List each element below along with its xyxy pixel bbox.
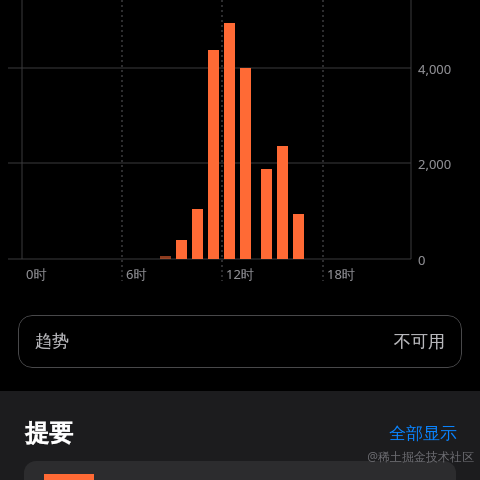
staticText: 18时 bbox=[327, 265, 355, 283]
staticText: @稀土掘金技术社区 bbox=[367, 448, 474, 464]
staticText: 12时 bbox=[226, 265, 254, 283]
button[interactable]: 趋势 bbox=[18, 315, 462, 368]
staticText: 全部显示 bbox=[389, 423, 457, 444]
staticText: 0 bbox=[418, 251, 426, 269]
staticText: 2,000 bbox=[418, 155, 452, 173]
staticText: 4,000 bbox=[418, 60, 452, 78]
button[interactable] bbox=[24, 461, 456, 480]
button[interactable]: 全部显示 bbox=[389, 423, 457, 444]
staticText: 不可用 bbox=[394, 331, 445, 352]
staticText: 0时 bbox=[26, 265, 47, 283]
staticText: 趋势 bbox=[35, 331, 69, 352]
staticText: 6时 bbox=[126, 265, 147, 283]
staticText: 提要 bbox=[25, 418, 73, 448]
